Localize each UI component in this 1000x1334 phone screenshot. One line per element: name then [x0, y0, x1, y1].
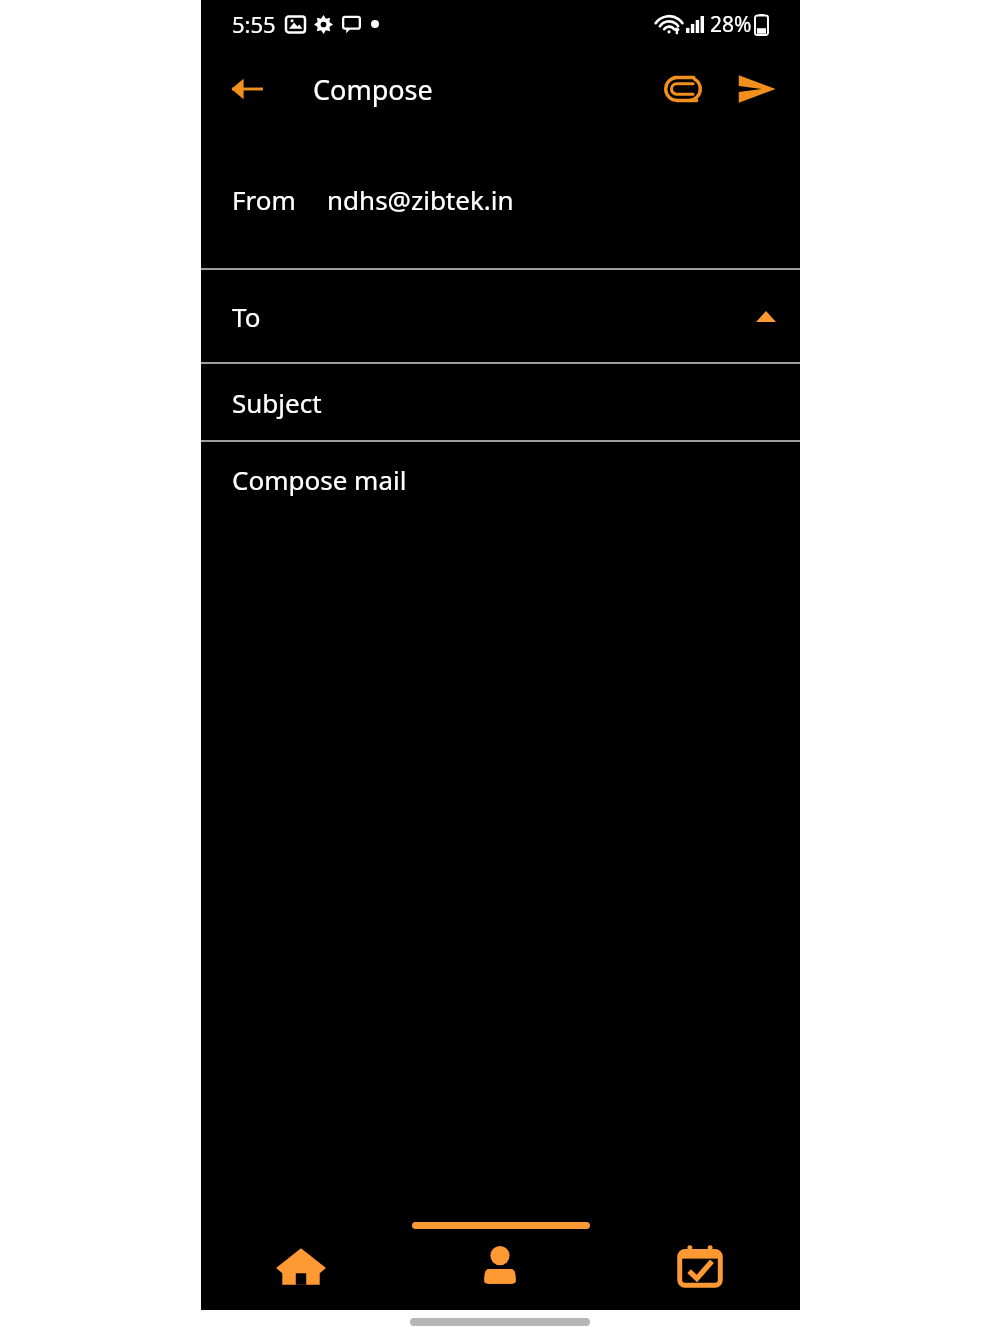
- button[interactable]: Attach file: [654, 60, 712, 118]
- button[interactable]: Profile: [400, 1210, 600, 1310]
- button[interactable]: Send: [728, 60, 786, 118]
- button[interactable]: Tasks: [600, 1210, 800, 1310]
- button[interactable]: To: [201, 270, 800, 362]
- staticText: ndhs@zibtek.in: [327, 182, 514, 217]
- staticText: Subject: [232, 385, 322, 420]
- button[interactable]: From: [201, 130, 800, 268]
- button[interactable]: Collapse recipients: [744, 294, 788, 338]
- button[interactable]: Back: [218, 60, 276, 118]
- staticText: From: [232, 182, 296, 217]
- staticText: 28%: [710, 10, 752, 39]
- staticText: To: [232, 299, 261, 334]
- button[interactable]: Subject: [201, 364, 800, 440]
- staticText: Compose mail: [232, 462, 407, 497]
- staticText: Compose: [313, 71, 433, 108]
- button[interactable]: Compose mail: [201, 442, 800, 1210]
- staticText: 5:55: [232, 9, 276, 39]
- button[interactable]: Home: [201, 1210, 400, 1310]
